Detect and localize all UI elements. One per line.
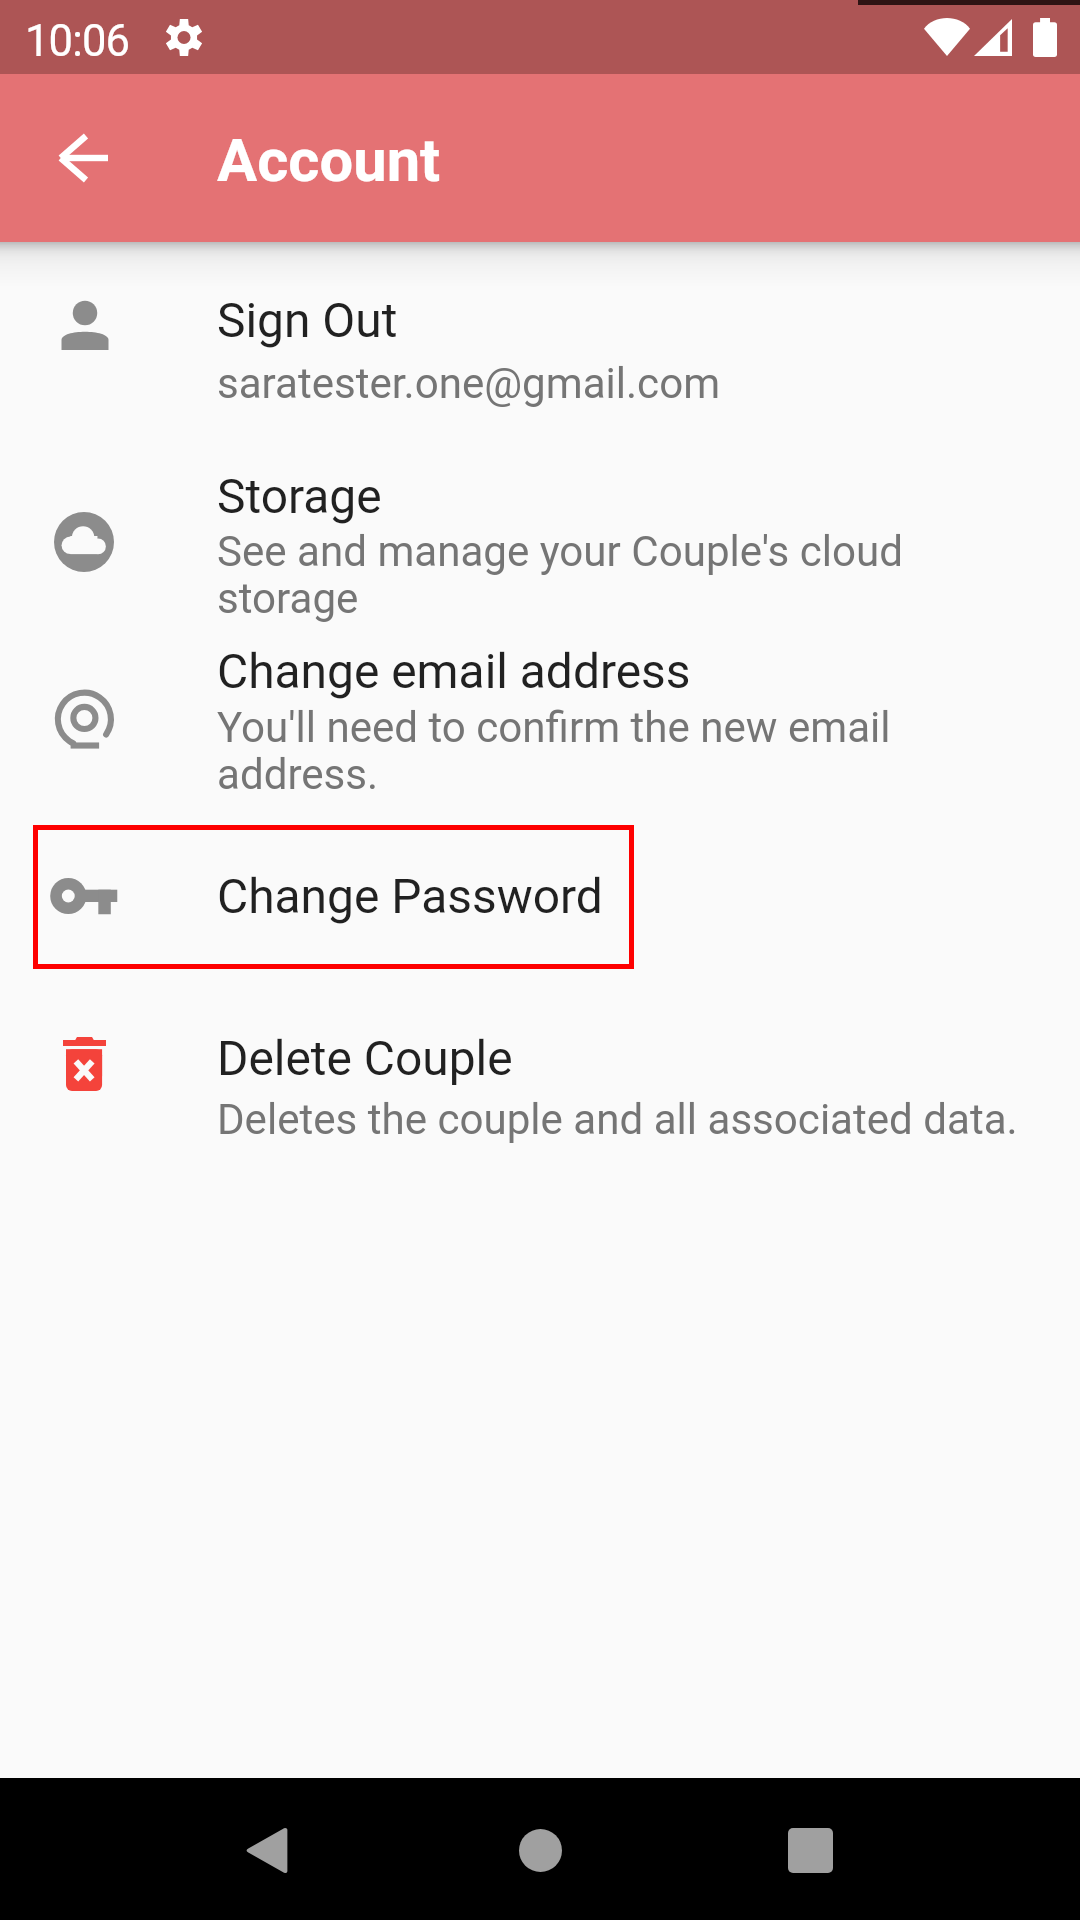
button[interactable]: Home xyxy=(405,1778,675,1920)
button[interactable]: Sign Out xyxy=(0,285,1080,440)
button[interactable]: Change Password xyxy=(0,825,1080,968)
staticText: Deletes the couple and all associated da… xyxy=(217,1095,1018,1144)
staticText: 10:06 xyxy=(25,16,130,67)
staticText: Storage xyxy=(217,469,382,525)
staticText: Change email address xyxy=(217,644,691,700)
staticText: See and manage your Couple's cloud xyxy=(217,527,903,576)
button[interactable]: Back xyxy=(135,1778,405,1920)
staticText: Sign Out xyxy=(217,293,398,349)
staticText: Account xyxy=(217,126,441,196)
staticText: Delete Couple xyxy=(217,1031,513,1087)
staticText: storage xyxy=(217,574,359,623)
button[interactable]: Storage xyxy=(0,450,1080,628)
staticText: saratester.one@gmail.com xyxy=(217,359,721,408)
button[interactable]: Delete Couple xyxy=(0,990,1080,1160)
staticText: Change Password xyxy=(217,869,603,925)
button[interactable]: Change email address xyxy=(0,632,1080,810)
button[interactable]: Navigate up xyxy=(35,110,131,206)
staticText: address. xyxy=(217,750,379,799)
button[interactable]: Recent apps xyxy=(675,1778,945,1920)
staticText: You'll need to confirm the new email xyxy=(217,703,891,752)
